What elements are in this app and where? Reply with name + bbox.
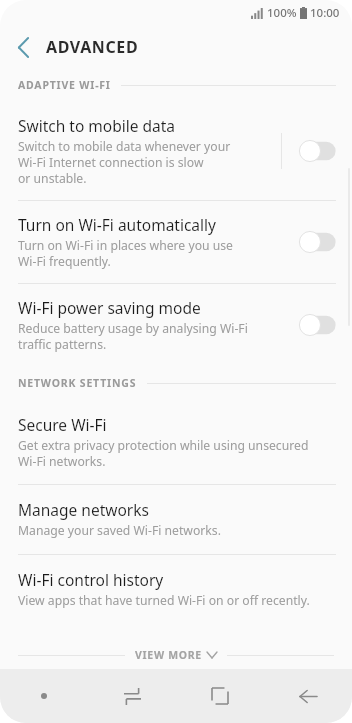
staticText: Switch to mobile data whenever your Wi-F… [18,138,231,186]
button[interactable]: Wi-Fi power saving mode [0,284,352,366]
staticText: VIEW MORE [135,648,202,662]
button[interactable]: Toggle [298,230,338,254]
button[interactable]: Switch to mobile data [0,102,352,200]
button[interactable]: Turn on Wi-Fi automatically [0,201,352,283]
staticText: ADVANCED [46,36,139,58]
staticText: Wi-Fi power saving mode [18,297,201,318]
staticText: 10:00 [310,5,340,21]
button[interactable]: Manage networks [0,485,352,554]
staticText: Manage your saved Wi-Fi networks. [18,522,221,539]
button[interactable]: VIEW MORE [0,641,352,669]
staticText: Reduce battery usage by analysing Wi-Fi … [18,320,248,352]
staticText: Wi-Fi control history [18,569,164,590]
staticText: Manage networks [18,499,149,520]
button[interactable]: Secure Wi-Fi [0,400,352,484]
button[interactable]: Recents [88,669,176,723]
button[interactable]: Home [176,669,264,723]
button[interactable]: Wi-Fi control history [0,555,352,624]
button[interactable]: Back [0,26,46,68]
button[interactable]: Toggle [298,139,338,163]
staticText: View apps that have turned Wi-Fi on or o… [18,592,310,609]
staticText: Get extra privacy protection while using… [18,437,309,469]
button[interactable]: Toggle [298,313,338,337]
button[interactable]: Back [264,669,352,723]
staticText: NETWORK SETTINGS [18,376,137,390]
staticText: ADAPTIVE WI-FI [18,78,111,92]
staticText: Turn on Wi-Fi in places where you use Wi… [18,237,233,269]
staticText: Turn on Wi-Fi automatically [18,214,216,235]
staticText: 100% [267,5,297,21]
staticText: Secure Wi-Fi [18,414,107,435]
staticText: Switch to mobile data [18,115,176,136]
